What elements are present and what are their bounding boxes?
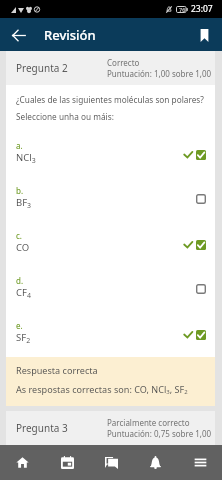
staticText: CF4 [16, 286, 31, 300]
button[interactable]: Calendar [45, 445, 89, 480]
staticText: CO [16, 241, 30, 254]
button[interactable]: a. [6, 140, 215, 185]
staticText: 23:07 [191, 3, 213, 15]
staticText: e. [16, 320, 23, 331]
button[interactable]: Notifications [133, 445, 177, 480]
button[interactable]: c. [6, 230, 215, 275]
staticText: Correcto [107, 57, 140, 68]
staticText: 76 [179, 6, 186, 13]
staticText: Puntuación: 1,00 sobre 1,00 [107, 68, 212, 79]
staticText: Pregunta 3 [16, 421, 68, 435]
staticText: Parcialmente correcto [107, 417, 190, 428]
staticText: NCl3 [16, 151, 36, 165]
button[interactable]: d. [6, 275, 215, 320]
staticText: Revisión [44, 26, 96, 44]
button[interactable]: Back [7, 24, 29, 46]
button[interactable]: Messages [89, 445, 133, 480]
staticText: Seleccione unha ou máis: [16, 111, 114, 122]
button[interactable]: Menu [178, 445, 222, 480]
button[interactable]: Bookmark [193, 24, 215, 46]
staticText: SF2 [16, 331, 31, 345]
staticText: d. [16, 275, 24, 286]
staticText: ¿Cuales de las siguientes moléculas son … [16, 94, 204, 105]
button[interactable]: b. [6, 185, 215, 230]
staticText: BF3 [16, 196, 32, 210]
staticText: a. [16, 140, 23, 151]
staticText: Puntuación: 0,75 sobre 1,00 [107, 428, 212, 439]
staticText: Respuesta correcta [16, 364, 98, 376]
button[interactable]: Home [0, 445, 44, 480]
staticText: As respostas correctas son: CO, NCl3, SF… [16, 383, 188, 396]
staticText: Pregunta 2 [16, 61, 68, 75]
button[interactable]: e. [6, 320, 215, 357]
staticText: c. [16, 230, 22, 241]
staticText: b. [16, 185, 24, 196]
